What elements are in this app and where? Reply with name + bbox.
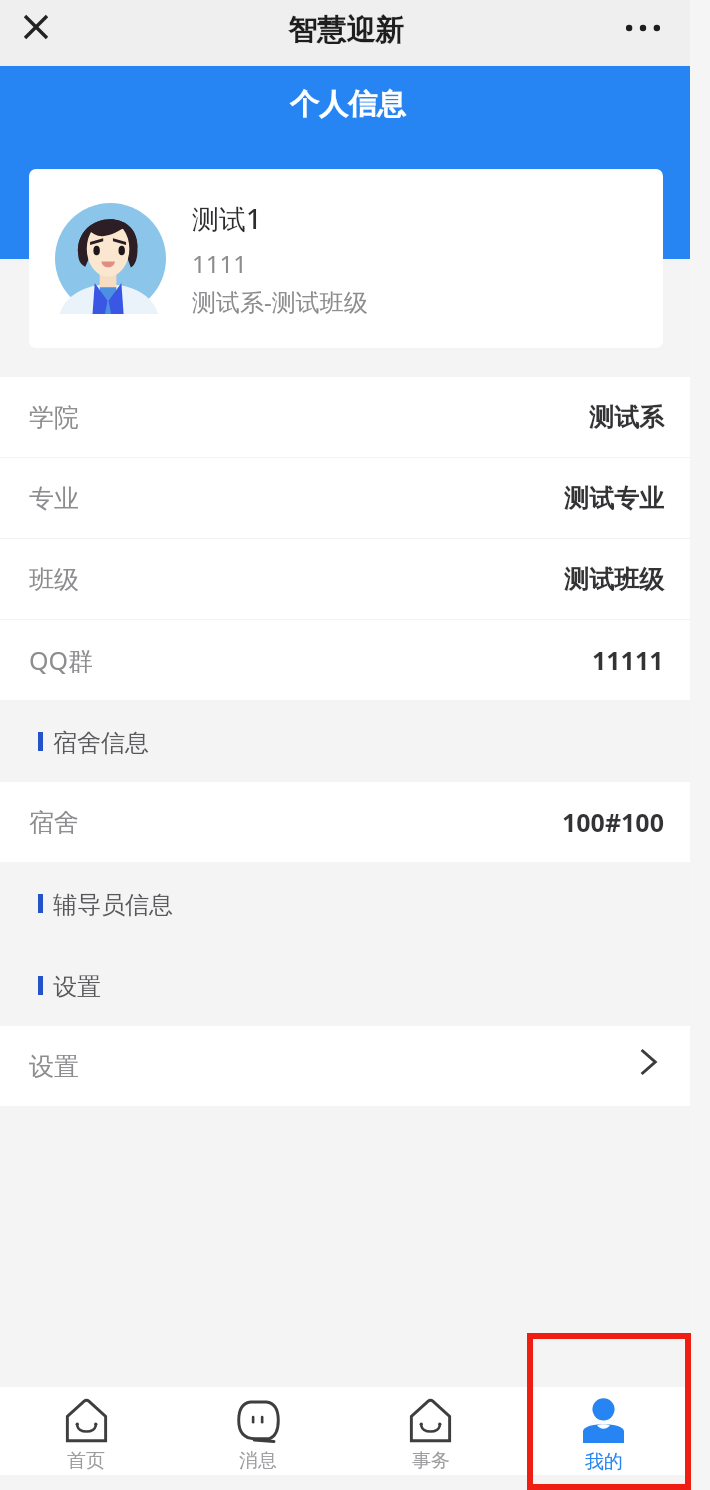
staticText: 测试系 — [589, 402, 664, 433]
staticText: 首页 — [67, 1449, 105, 1473]
button[interactable]: 设置 — [0, 1026, 690, 1106]
button[interactable]: 班级 — [0, 539, 690, 619]
button[interactable]: 首页 — [0, 1387, 172, 1475]
staticText: 宿舍信息 — [53, 728, 149, 758]
staticText: 我的 — [585, 1450, 623, 1474]
staticText: 辅导员信息 — [53, 890, 173, 920]
staticText: 测试专业 — [564, 483, 664, 514]
staticText: 宿舍 — [29, 807, 79, 838]
button[interactable]: 消息 — [172, 1387, 344, 1475]
staticText: 11111 — [592, 643, 664, 677]
staticText: 班级 — [29, 564, 79, 595]
staticText: 测试系-测试班级 — [192, 285, 368, 318]
staticText: QQ群 — [29, 643, 94, 677]
button[interactable]: 宿舍 — [0, 782, 690, 862]
button[interactable]: 我的 — [517, 1387, 690, 1475]
staticText: 消息 — [239, 1449, 277, 1473]
button[interactable]: 学院 — [0, 377, 690, 457]
staticText: 测试1 — [192, 200, 262, 237]
staticText: 个人信息 — [290, 86, 406, 123]
staticText: 专业 — [29, 483, 79, 514]
staticText: 学院 — [29, 402, 79, 433]
button[interactable]: More options — [617, 2, 669, 54]
staticText: 1111 — [192, 247, 247, 280]
button[interactable]: 专业 — [0, 458, 690, 538]
button[interactable]: Close — [10, 1, 62, 53]
button[interactable]: 测试1 — [29, 169, 663, 348]
staticText: 测试班级 — [564, 564, 664, 595]
staticText: 100#100 — [562, 805, 664, 839]
staticText: 设置 — [53, 972, 101, 1002]
staticText: 事务 — [412, 1449, 450, 1473]
button[interactable]: 事务 — [344, 1387, 517, 1475]
button[interactable]: QQ群 — [0, 620, 690, 700]
staticText: 智慧迎新 — [288, 12, 404, 49]
staticText: 设置 — [29, 1051, 79, 1082]
